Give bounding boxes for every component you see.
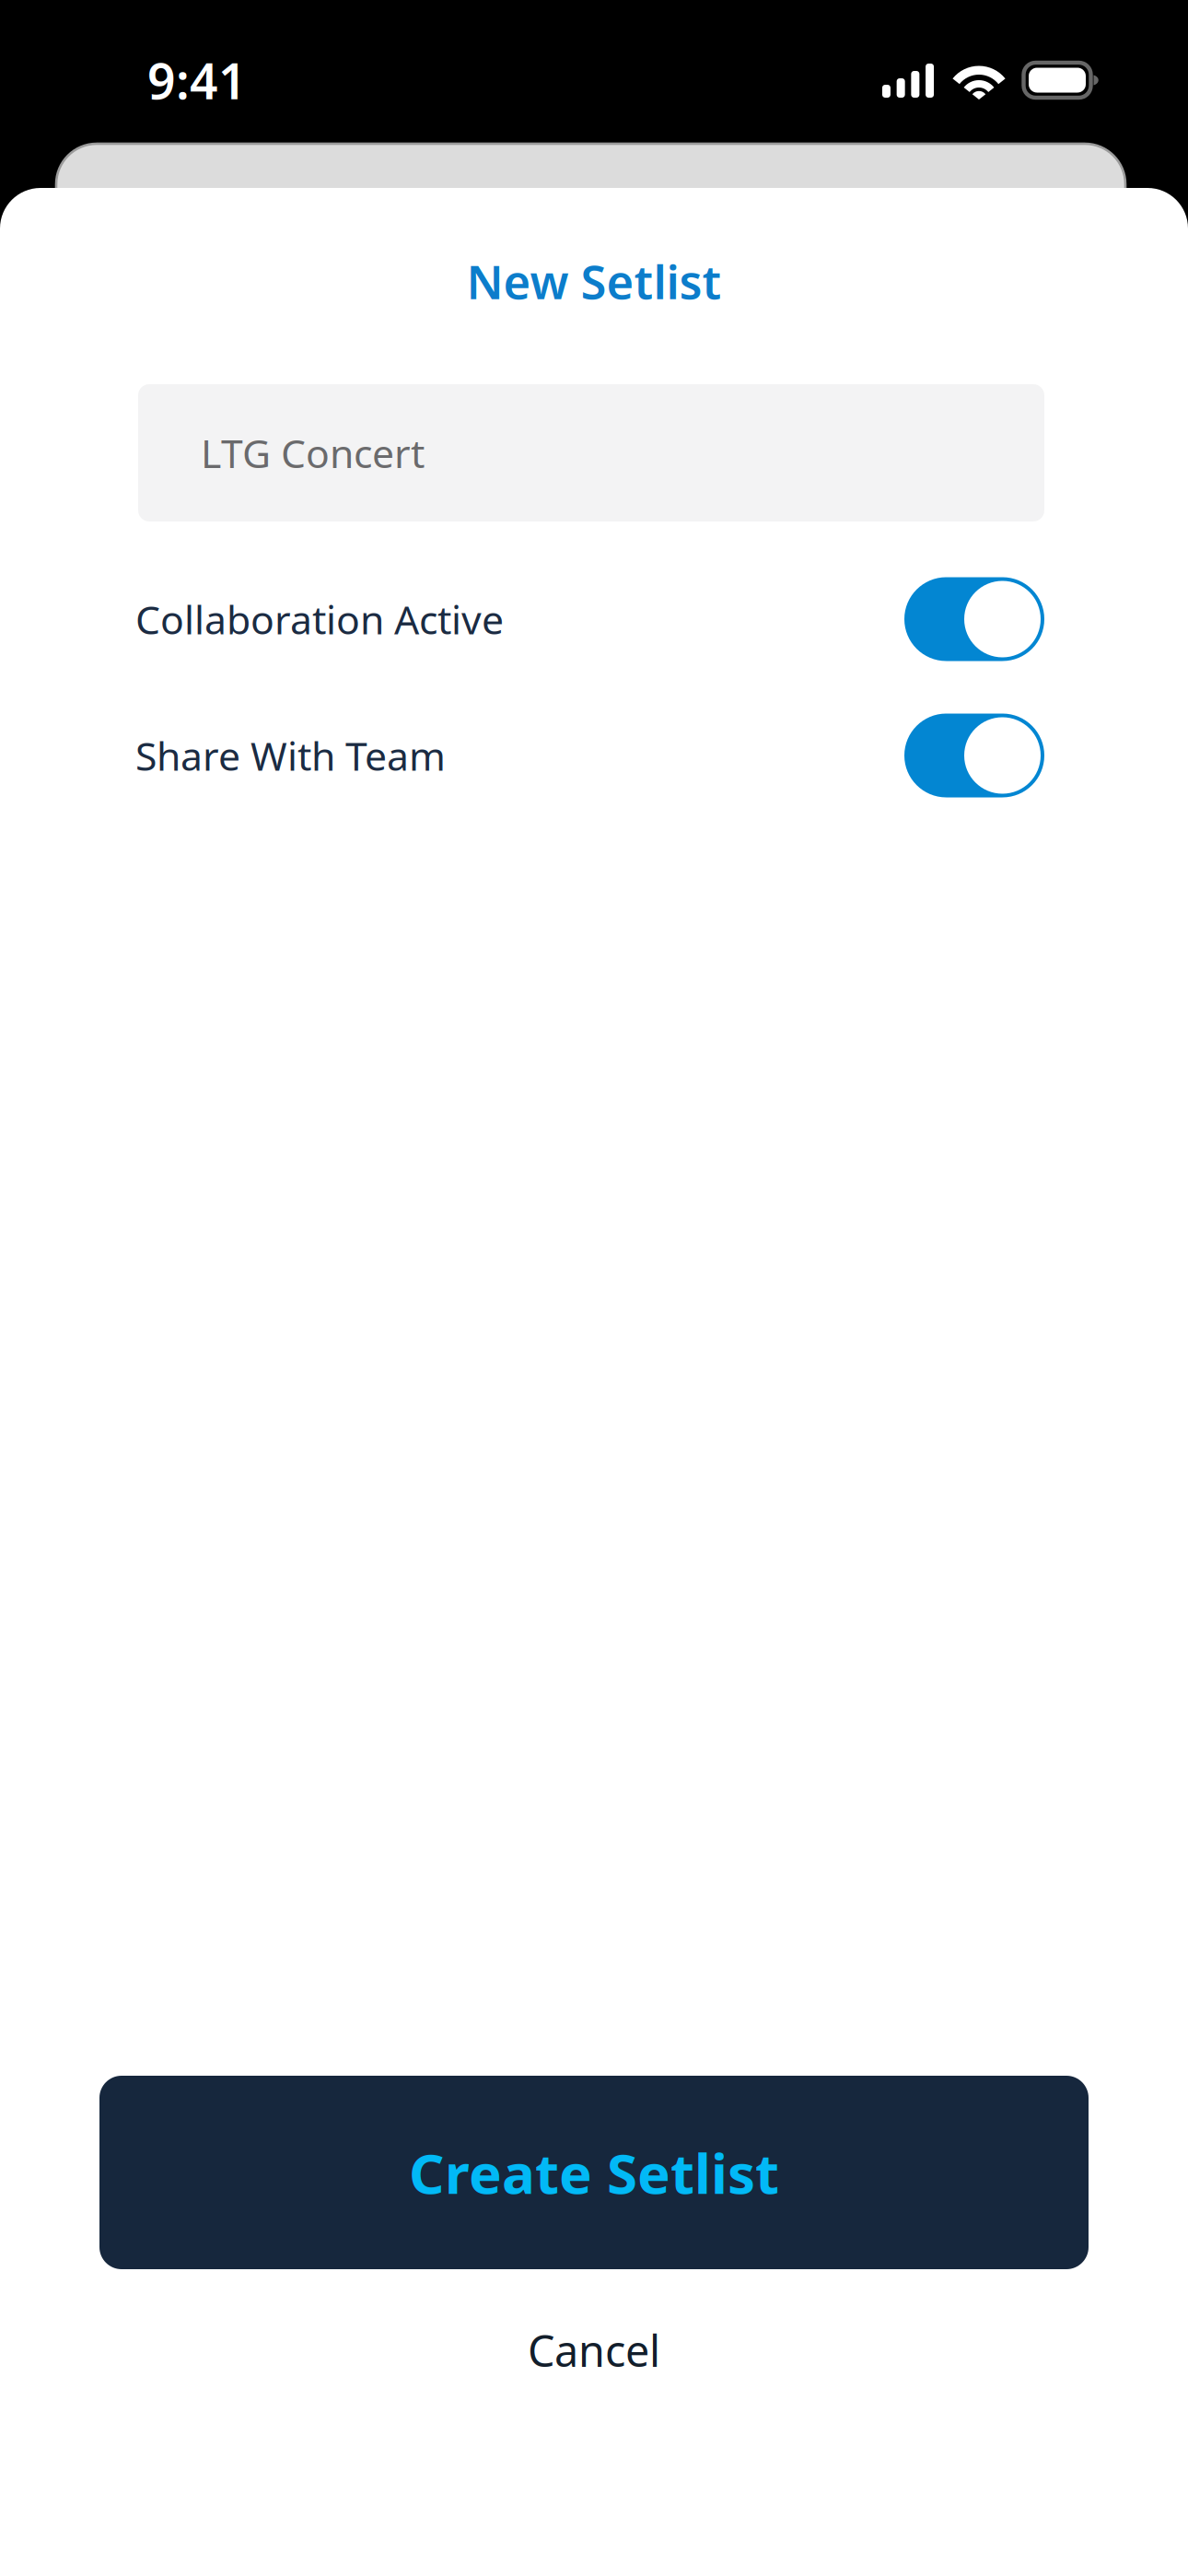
staticText: 9:41 xyxy=(147,48,247,113)
staticText: Create Setlist xyxy=(409,2136,779,2209)
staticText: LTG Concert xyxy=(201,427,425,479)
button[interactable]: Create Setlist xyxy=(99,2076,1089,2269)
button[interactable]: Cancel xyxy=(99,2306,1089,2395)
button[interactable]: Collaboration Active xyxy=(0,551,1188,687)
staticText: New Setlist xyxy=(466,250,722,312)
staticText: Cancel xyxy=(528,2322,660,2379)
button[interactable]: LTG Concert xyxy=(138,384,1044,521)
staticText: Share With Team xyxy=(135,729,446,782)
staticText: Collaboration Active xyxy=(135,593,504,645)
button[interactable]: Share With Team xyxy=(0,687,1188,824)
